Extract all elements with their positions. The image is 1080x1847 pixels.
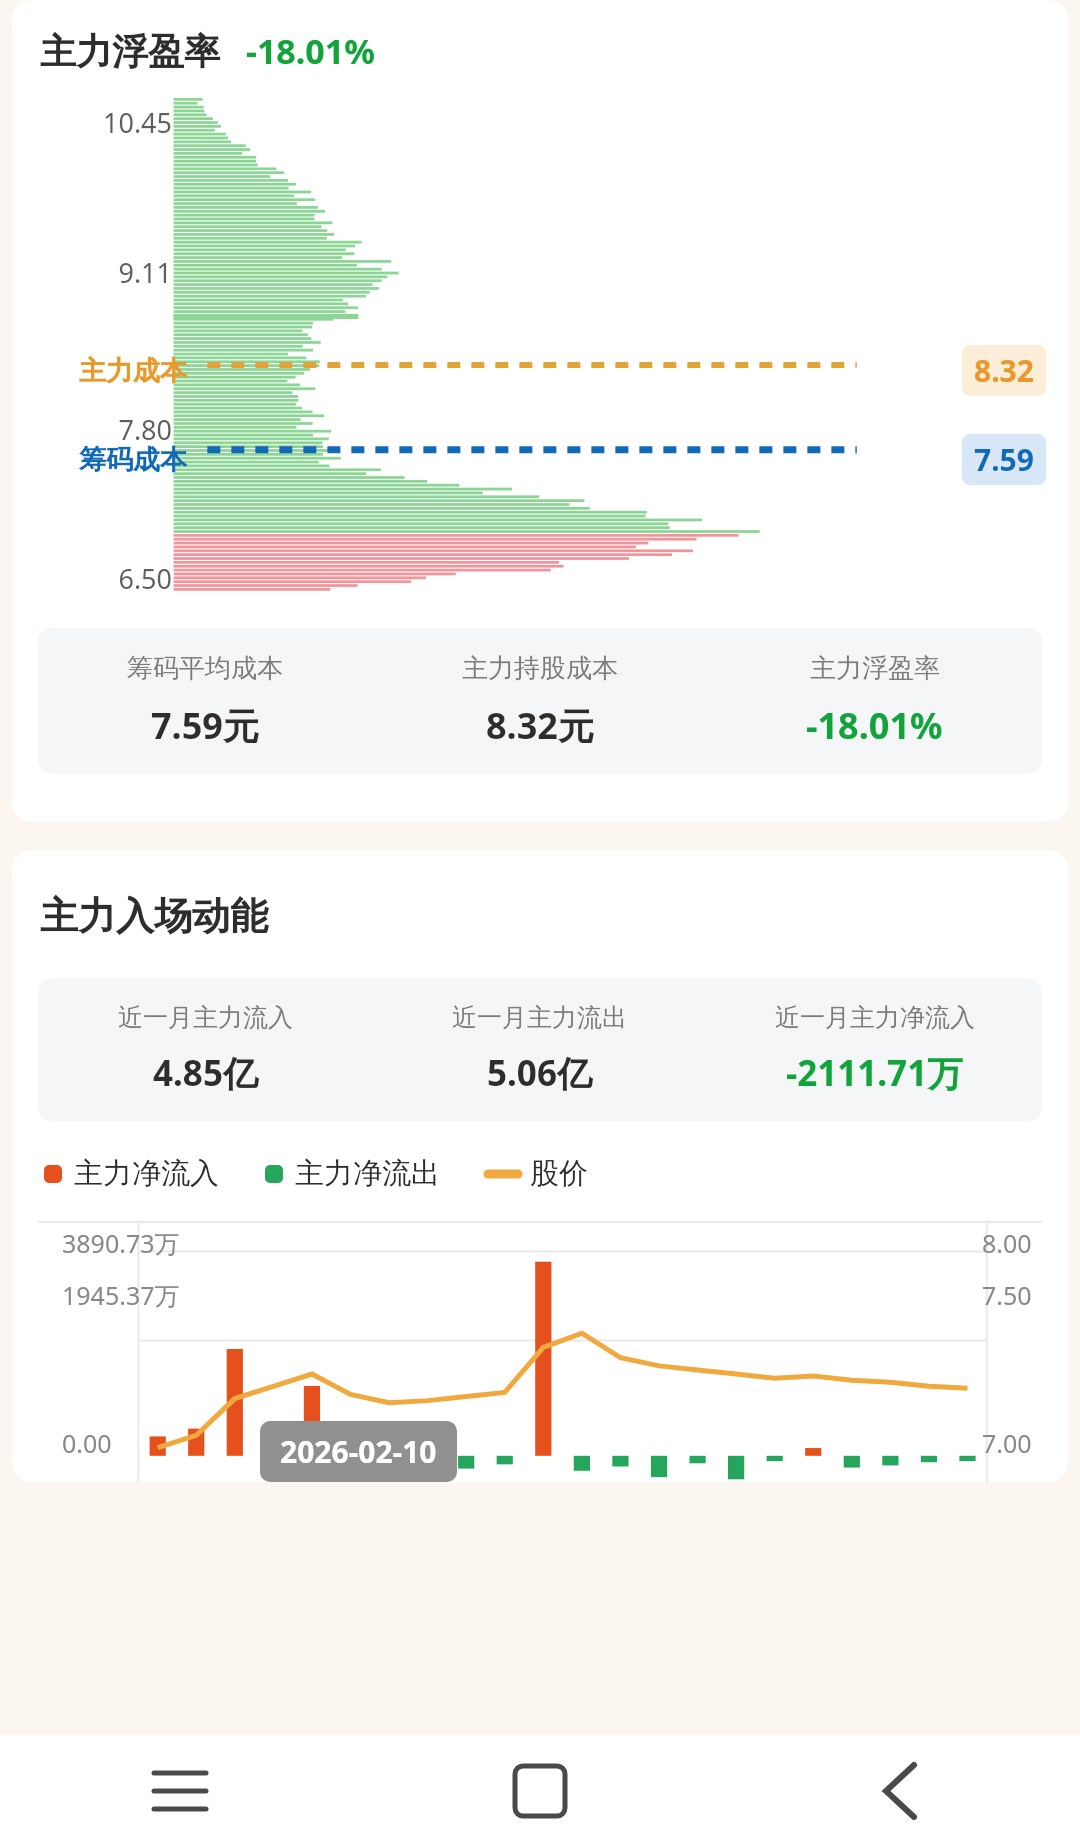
staticText: 9.11 xyxy=(12,254,172,291)
staticText: 主力浮盈率 xyxy=(810,652,940,685)
staticText: 主力净流出 xyxy=(295,1155,440,1192)
button[interactable]: Home xyxy=(360,1735,720,1847)
staticText: 近一月主力流入 xyxy=(118,1002,293,1033)
staticText: 3890.73万 xyxy=(62,1226,180,1260)
button[interactable]: 主力净流出 xyxy=(265,1155,440,1192)
button[interactable]: 筹码平均成本 xyxy=(38,652,1042,750)
staticText: 6.50 xyxy=(12,560,172,597)
staticText: 7.80 xyxy=(12,411,172,448)
button[interactable]: 主力浮盈率 xyxy=(12,0,1068,822)
staticText: 主力浮盈率 xyxy=(40,29,220,74)
button[interactable]: Back xyxy=(720,1735,1080,1847)
staticText: 主力净流入 xyxy=(74,1155,219,1192)
button[interactable]: 主力入场动能 xyxy=(12,850,1068,1482)
staticText: 8.00 xyxy=(982,1226,1032,1260)
staticText: 主力持股成本 xyxy=(462,652,618,685)
staticText: 8.32 xyxy=(974,350,1034,391)
staticText: 主力入场动能 xyxy=(40,892,268,940)
staticText: 近一月主力流出 xyxy=(452,1002,627,1033)
button[interactable]: 主力净流入 xyxy=(44,1155,219,1192)
staticText: -2111.71万 xyxy=(786,1049,963,1097)
button[interactable]: Menu xyxy=(0,1735,360,1847)
staticText: 筹码平均成本 xyxy=(127,652,283,685)
staticText: 1945.37万 xyxy=(62,1278,180,1312)
staticText: 主力成本 xyxy=(12,354,187,388)
staticText: 0.00 xyxy=(62,1426,112,1460)
staticText: 7.59 xyxy=(974,439,1034,480)
button[interactable]: 股价 xyxy=(488,1155,588,1192)
staticText: 2026-02-10 xyxy=(280,1431,437,1472)
staticText: 8.32元 xyxy=(486,701,594,750)
button[interactable]: 近一月主力流入 xyxy=(38,1002,1042,1097)
staticText: 7.50 xyxy=(982,1278,1032,1312)
staticText: 7.59元 xyxy=(151,701,259,750)
staticText: -18.01% xyxy=(806,701,943,750)
staticText: 7.00 xyxy=(982,1426,1032,1460)
staticText: 股价 xyxy=(530,1155,588,1192)
staticText: 5.06亿 xyxy=(487,1049,592,1097)
staticText: -18.01% xyxy=(246,28,375,74)
staticText: 10.45 xyxy=(12,104,172,141)
staticText: 筹码成本 xyxy=(12,443,187,477)
staticText: 近一月主力净流入 xyxy=(775,1002,975,1033)
staticText: 4.85亿 xyxy=(153,1049,258,1097)
